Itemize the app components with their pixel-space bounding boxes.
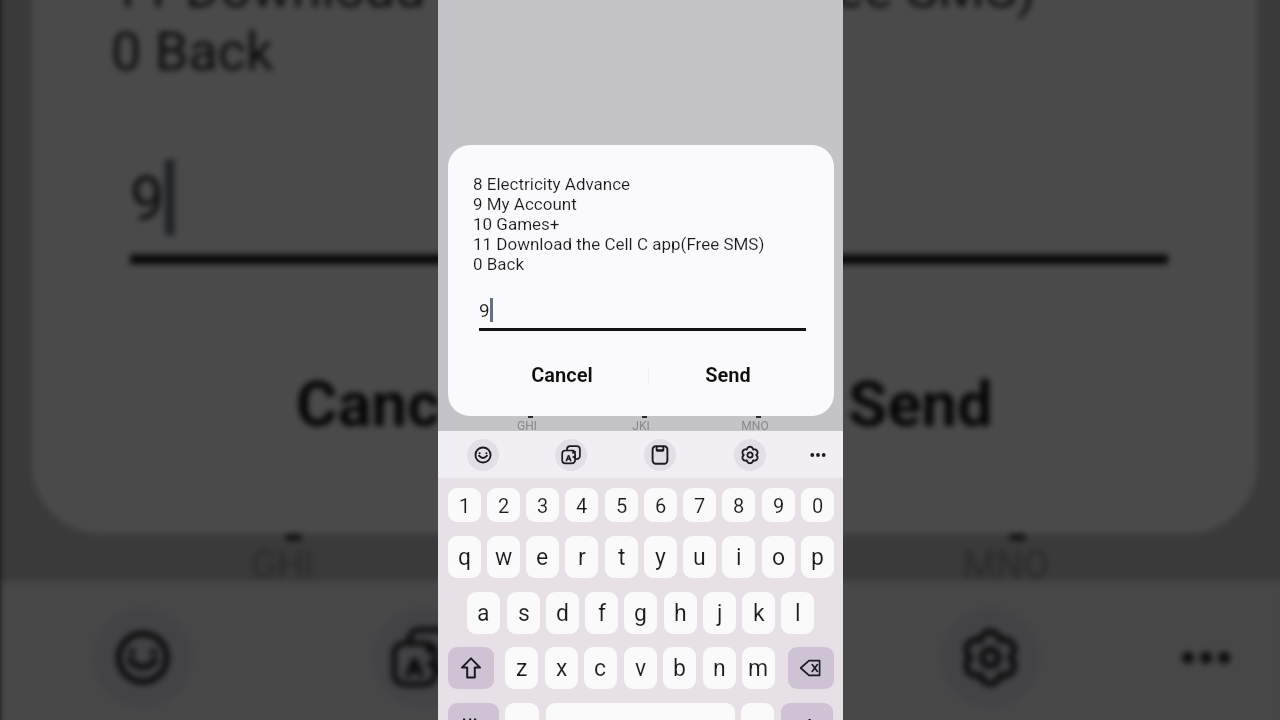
button[interactable]: Settings bbox=[734, 439, 766, 471]
staticText: 5 bbox=[616, 494, 628, 517]
staticText: o bbox=[772, 544, 786, 571]
button[interactable]: s bbox=[507, 592, 540, 634]
button[interactable]: y bbox=[644, 536, 677, 578]
button[interactable]: x bbox=[545, 647, 578, 689]
button[interactable]: Settings bbox=[939, 607, 1041, 708]
button[interactable]: 8 bbox=[722, 488, 755, 522]
staticText: w bbox=[495, 544, 513, 571]
staticText: Send bbox=[847, 366, 993, 439]
button[interactable]: p bbox=[801, 536, 834, 578]
button[interactable]: l bbox=[781, 592, 814, 634]
button[interactable]: m bbox=[742, 647, 775, 689]
button[interactable]: z bbox=[505, 647, 538, 689]
staticText: MNO bbox=[735, 419, 775, 433]
staticText: Cancel bbox=[531, 363, 593, 386]
button[interactable]: Cancel bbox=[510, 355, 614, 393]
staticText: 3 bbox=[537, 494, 549, 517]
staticText: u bbox=[693, 544, 706, 571]
staticText: b bbox=[673, 655, 686, 682]
staticText: 0 bbox=[812, 494, 824, 517]
staticText: 10 Games+ bbox=[473, 214, 560, 234]
staticText: k bbox=[753, 600, 765, 627]
staticText: 8 bbox=[733, 494, 745, 517]
button[interactable]: d bbox=[546, 592, 579, 634]
button[interactable]: Symbols bbox=[448, 703, 499, 720]
button[interactable]: Emoji bbox=[92, 607, 194, 708]
button[interactable]: g bbox=[624, 592, 657, 634]
staticText: e bbox=[536, 544, 549, 571]
staticText: v bbox=[635, 655, 647, 682]
staticText: a bbox=[477, 600, 490, 627]
button[interactable]: k bbox=[742, 592, 775, 634]
staticText: l bbox=[795, 600, 801, 627]
staticText: d bbox=[556, 600, 569, 627]
staticText: 0 Back bbox=[473, 254, 525, 274]
button[interactable]: Shift bbox=[448, 647, 494, 689]
staticText: j bbox=[717, 600, 723, 627]
button[interactable]: u bbox=[683, 536, 716, 578]
staticText: g bbox=[634, 600, 647, 627]
button[interactable]: q bbox=[448, 536, 481, 578]
staticText: c bbox=[594, 655, 607, 682]
button[interactable]: 9 bbox=[762, 488, 795, 522]
staticText: t bbox=[618, 544, 626, 571]
button[interactable]: v bbox=[624, 647, 657, 689]
staticText: 7 bbox=[694, 494, 706, 517]
staticText: z bbox=[516, 655, 528, 682]
button[interactable]: Translate bbox=[371, 607, 473, 708]
button[interactable]: Enter bbox=[781, 703, 833, 720]
button[interactable]: t bbox=[605, 536, 638, 578]
button[interactable]: 1 bbox=[448, 488, 481, 522]
button[interactable]: r bbox=[565, 536, 598, 578]
staticText: 11 Download the Cell C app(Free SMS) bbox=[111, 0, 1038, 20]
button[interactable]: 6 bbox=[644, 488, 677, 522]
staticText: s bbox=[518, 600, 530, 627]
button[interactable]: e bbox=[526, 536, 559, 578]
button[interactable]: f bbox=[585, 592, 618, 634]
button[interactable]: Clipboard bbox=[644, 439, 676, 471]
button[interactable]: Clipboard bbox=[654, 607, 755, 708]
button[interactable]: w bbox=[487, 536, 520, 578]
staticText: i bbox=[736, 544, 742, 571]
button[interactable]: h bbox=[664, 592, 697, 634]
button[interactable]: Send bbox=[684, 355, 772, 393]
button[interactable]: 3 bbox=[526, 488, 559, 522]
button[interactable]: 2 bbox=[487, 488, 520, 522]
staticText: n bbox=[713, 655, 726, 682]
button[interactable]: n bbox=[703, 647, 736, 689]
button[interactable]: 4 bbox=[565, 488, 598, 522]
button[interactable]: i bbox=[722, 536, 755, 578]
button[interactable]: j bbox=[703, 592, 736, 634]
button[interactable]: Emoji bbox=[467, 439, 499, 471]
staticText: 9 bbox=[130, 162, 165, 232]
staticText: 1 bbox=[459, 494, 471, 517]
staticText: GHI bbox=[507, 419, 547, 433]
button[interactable]: More options bbox=[1155, 607, 1257, 708]
button[interactable]: o bbox=[762, 536, 795, 578]
staticText: q bbox=[458, 544, 472, 571]
button[interactable]: Backspace bbox=[788, 647, 834, 689]
button[interactable]: Translate bbox=[555, 439, 587, 471]
staticText: r bbox=[578, 544, 586, 571]
button[interactable]: Cancel bbox=[228, 340, 559, 461]
staticText: h bbox=[674, 600, 687, 627]
staticText: 0 Back bbox=[111, 20, 276, 83]
staticText: 4 bbox=[576, 494, 588, 517]
button[interactable]: Comma bbox=[505, 703, 539, 720]
button[interactable]: More options bbox=[802, 439, 834, 471]
staticText: MNO bbox=[943, 543, 1070, 588]
button[interactable]: 5 bbox=[605, 488, 638, 522]
button[interactable]: Period bbox=[741, 703, 774, 720]
button[interactable]: c bbox=[584, 647, 617, 689]
button[interactable]: a bbox=[467, 592, 500, 634]
button[interactable]: 7 bbox=[683, 488, 716, 522]
staticText: 6 bbox=[655, 494, 667, 517]
staticText: Cancel bbox=[295, 366, 492, 439]
staticText: 11 Download the Cell C app(Free SMS) bbox=[473, 234, 765, 254]
staticText: f bbox=[598, 600, 606, 627]
button[interactable]: b bbox=[663, 647, 696, 689]
staticText: x bbox=[556, 655, 568, 682]
button[interactable]: 0 bbox=[801, 488, 834, 522]
button[interactable]: Send bbox=[781, 340, 1060, 461]
